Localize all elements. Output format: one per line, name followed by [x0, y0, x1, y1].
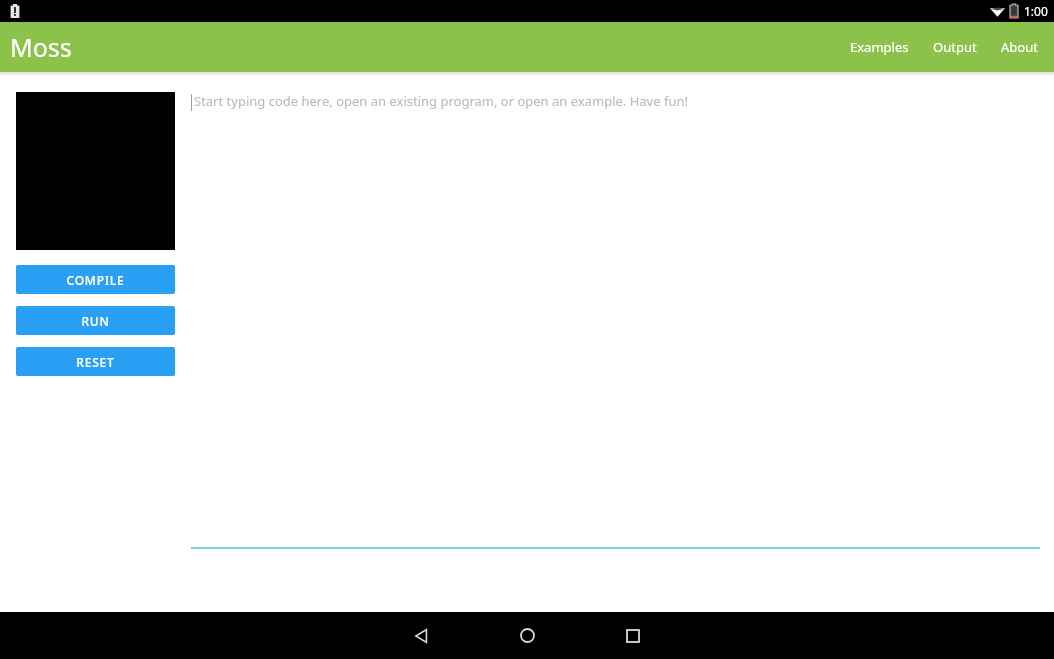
button[interactable]: COMPILE	[16, 265, 175, 294]
button[interactable]: Recent apps	[607, 612, 659, 659]
staticText: Output	[933, 38, 977, 56]
staticText: COMPILE	[66, 272, 125, 288]
button[interactable]: RUN	[16, 306, 175, 335]
staticText: RUN	[81, 313, 110, 329]
button[interactable]: Output	[931, 32, 979, 62]
staticText: Moss	[10, 30, 72, 64]
button[interactable]: Back	[395, 612, 447, 659]
button[interactable]: Examples	[848, 32, 911, 62]
button[interactable]: About	[999, 32, 1040, 62]
staticText: 1:00	[1024, 3, 1048, 19]
button[interactable]: Home	[501, 612, 553, 659]
staticText: RESET	[76, 354, 115, 370]
button[interactable]: RESET	[16, 347, 175, 376]
staticText: Start typing code here, open an existing…	[194, 92, 688, 110]
staticText: About	[1001, 38, 1038, 56]
staticText: Examples	[850, 38, 909, 56]
